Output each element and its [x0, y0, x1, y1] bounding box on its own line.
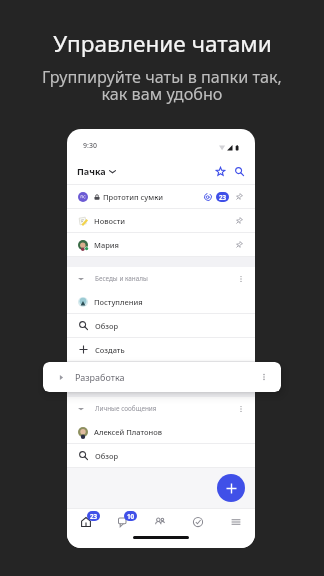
staticText: Разработка [75, 371, 125, 383]
button[interactable]: Tasks [179, 509, 217, 535]
staticText: Пачка [77, 165, 106, 177]
button[interactable]: Новости [67, 209, 255, 232]
staticText: 23 [219, 193, 227, 202]
staticText: Мария [94, 240, 119, 250]
staticText: 9:30 [83, 141, 97, 151]
button[interactable]: Личные сообщения [67, 397, 255, 420]
staticText: Новости [94, 216, 126, 226]
staticText: Личные сообщения [95, 404, 157, 413]
button[interactable]: Create chat [217, 474, 245, 502]
button[interactable]: Menu [217, 509, 255, 535]
staticText: Алексей Платонов [94, 427, 163, 437]
staticText: Поступления [94, 297, 143, 307]
button[interactable]: Поступления [67, 290, 255, 313]
button[interactable]: Разработка [43, 362, 281, 392]
staticText: 10 [127, 512, 135, 521]
button[interactable]: Home [67, 509, 104, 535]
staticText: Создать [95, 345, 125, 355]
button[interactable]: Создать [67, 338, 255, 361]
staticText: Беседы и каналы [95, 274, 148, 283]
staticText: Прототип сумки [103, 192, 164, 202]
button[interactable]: Алексей Платонов [67, 420, 255, 443]
button[interactable]: Пачка [77, 165, 116, 177]
button[interactable]: Contacts [141, 509, 179, 535]
button[interactable]: Мария [67, 233, 255, 256]
button[interactable]: Favourites [212, 163, 229, 180]
button[interactable]: More options [236, 404, 246, 414]
button[interactable]: Обзор [67, 314, 255, 337]
staticText: 23 [90, 512, 98, 521]
button[interactable]: Беседы и каналы [67, 267, 255, 290]
staticText: Обзор [95, 451, 119, 461]
button[interactable]: Chats [104, 509, 141, 535]
staticText: Группируйте чаты в папки так, как вам уд… [42, 66, 282, 105]
staticText: Обзор [95, 321, 119, 331]
button[interactable]: Прототип сумки [67, 185, 255, 208]
button[interactable]: More options [236, 274, 246, 284]
button[interactable]: Обзор [67, 444, 255, 467]
staticText: Управление чатами [53, 28, 272, 59]
button[interactable]: Search [231, 163, 248, 180]
button[interactable]: Folder options [258, 371, 270, 383]
